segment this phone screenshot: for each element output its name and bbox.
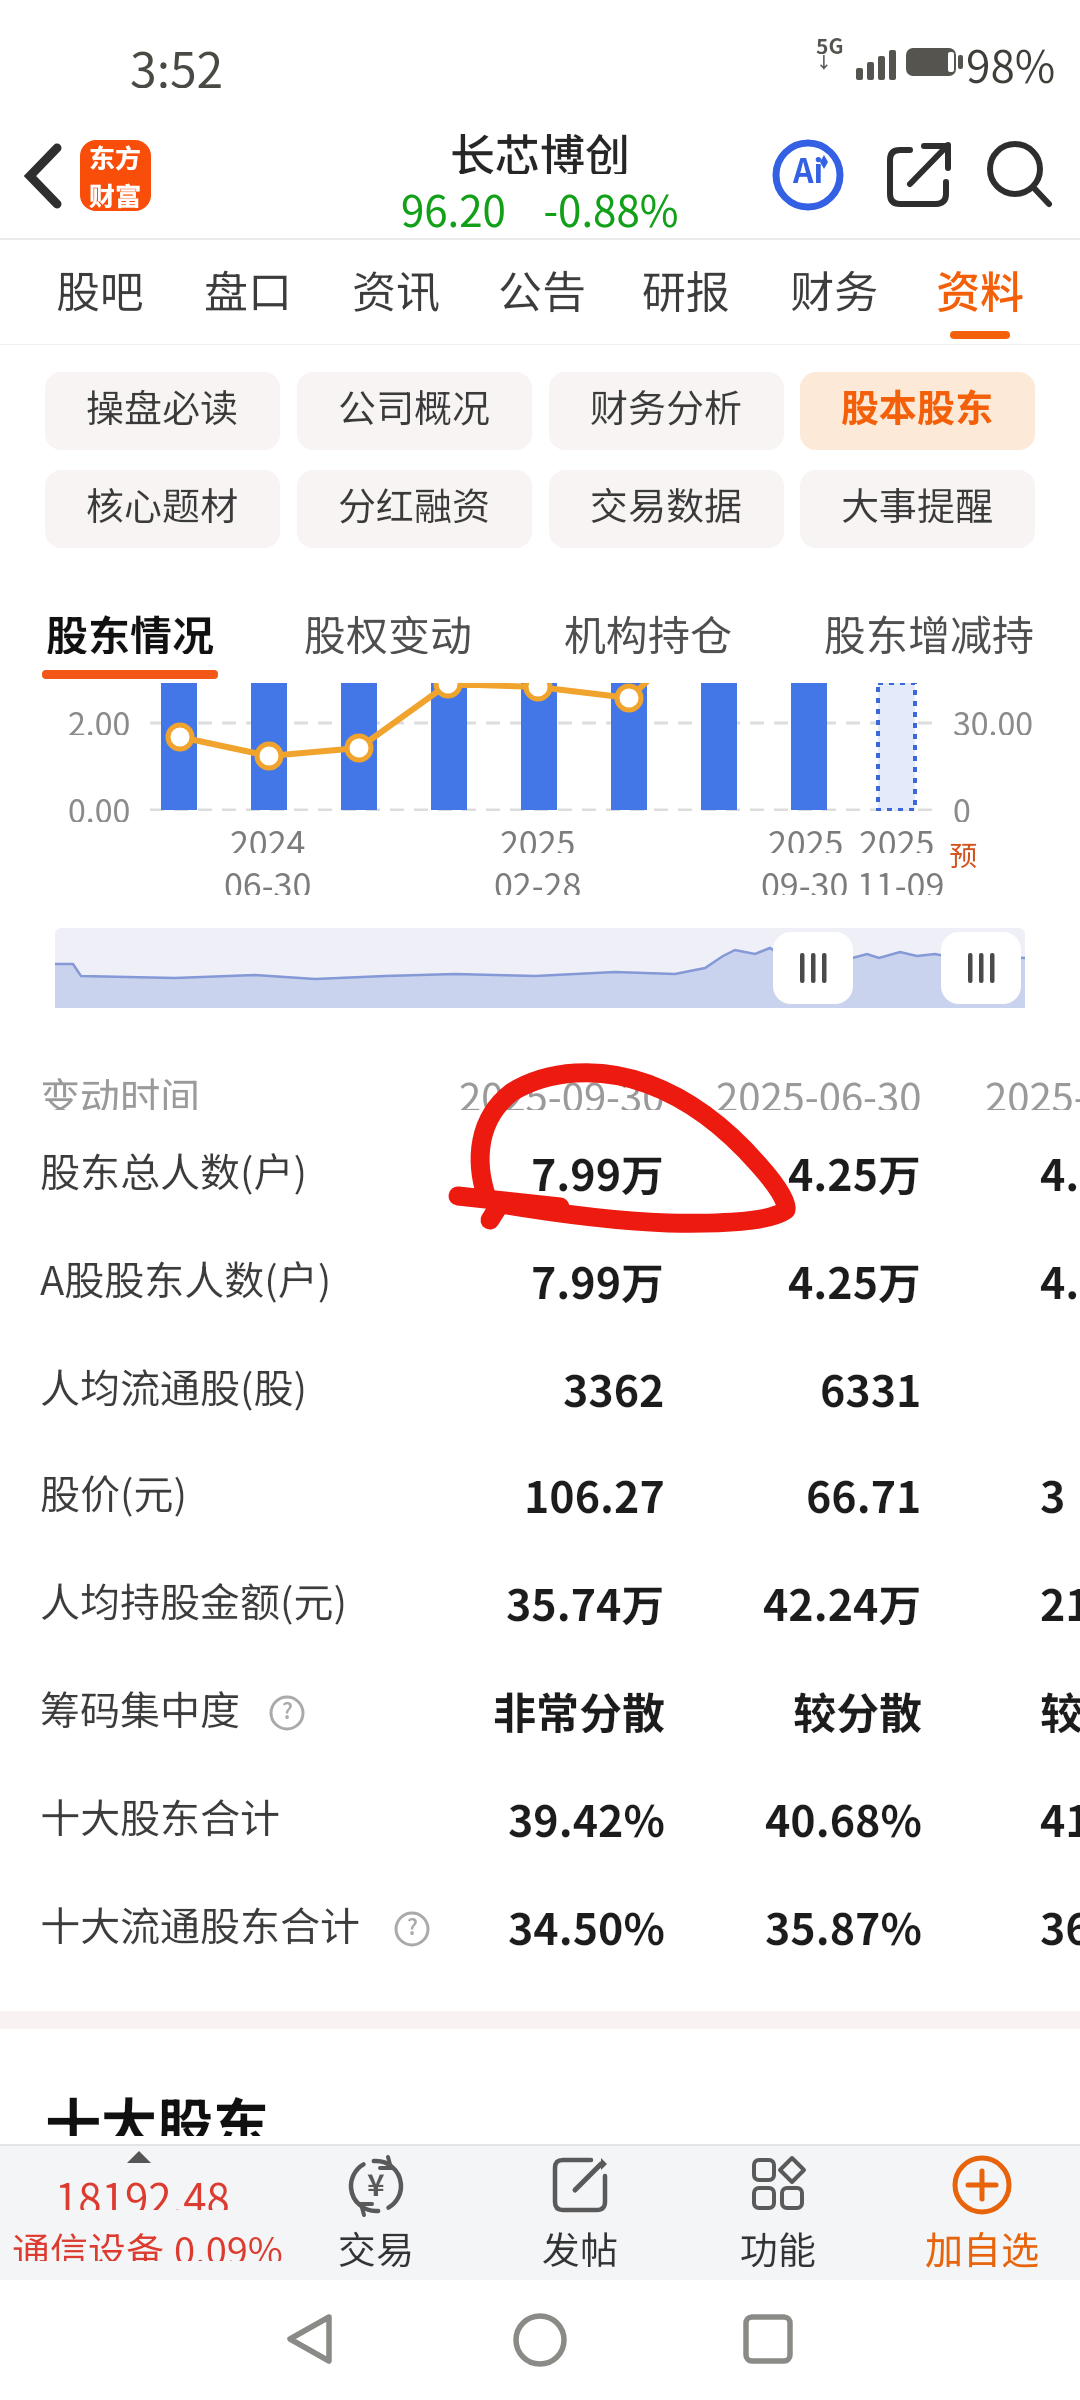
button[interactable]: 机构持仓 bbox=[560, 602, 736, 654]
staticText: 通信设备 bbox=[12, 2221, 165, 2261]
button[interactable] bbox=[470, 2290, 610, 2390]
button[interactable]: 分红融资 bbox=[297, 470, 532, 548]
staticText: 2025-1 bbox=[985, 1066, 1080, 1110]
button[interactable]: 股东情况 bbox=[42, 602, 218, 654]
staticText: 3:52 bbox=[130, 32, 224, 88]
staticText: 2025 bbox=[500, 817, 576, 853]
staticText: 分红融资 bbox=[338, 476, 491, 531]
staticText: 加自选 bbox=[925, 2220, 1040, 2270]
button[interactable]: 资料 bbox=[910, 256, 1050, 322]
staticText: 盘口 bbox=[204, 257, 292, 321]
button[interactable]: 资讯 bbox=[326, 256, 466, 322]
staticText: 2025-09-30 bbox=[459, 1066, 665, 1110]
staticText: 发帖 bbox=[542, 2220, 619, 2270]
button[interactable]: 股吧 bbox=[30, 256, 170, 322]
button[interactable]: ? bbox=[269, 1695, 305, 1731]
staticText: 股吧 bbox=[56, 257, 144, 321]
button[interactable]: 操盘必读 bbox=[45, 372, 280, 450]
staticText: 11-09 bbox=[857, 859, 945, 895]
staticText: Ai bbox=[793, 146, 824, 192]
staticText: 30.00 bbox=[953, 699, 1033, 735]
button[interactable]: 大事提醒 bbox=[800, 470, 1035, 548]
staticText: 长芯博创 bbox=[450, 120, 631, 174]
staticText: 39.42% bbox=[508, 1787, 665, 1841]
staticText: 大事提醒 bbox=[841, 476, 994, 531]
staticText: 02-28 bbox=[494, 859, 582, 895]
button[interactable] bbox=[773, 932, 853, 1004]
staticText: 98% bbox=[966, 32, 1056, 88]
staticText: 2025-06-30 bbox=[716, 1066, 922, 1110]
button[interactable]: 股东增减持 bbox=[822, 602, 1036, 654]
staticText: 筹码集中度 bbox=[40, 1679, 240, 1733]
staticText: ? bbox=[407, 1909, 418, 1941]
staticText: 非常分散 bbox=[493, 1679, 665, 1733]
button[interactable] bbox=[884, 142, 954, 212]
staticText: ¥ bbox=[367, 2161, 385, 2204]
button[interactable]: 东方 bbox=[80, 140, 151, 211]
button[interactable]: 财务 bbox=[764, 256, 904, 322]
staticText: 4.6 bbox=[1040, 1249, 1080, 1303]
staticText: 0.09% bbox=[174, 2221, 283, 2261]
button[interactable]: 股本股东 bbox=[800, 372, 1035, 450]
button[interactable]: 功能 bbox=[712, 2146, 844, 2280]
staticText: 股权变动 bbox=[304, 602, 473, 654]
staticText: 资料 bbox=[936, 257, 1024, 321]
button[interactable] bbox=[941, 932, 1021, 1004]
staticText: 人均流通股(股) bbox=[40, 1357, 308, 1411]
staticText: 4.25万 bbox=[788, 1249, 922, 1303]
staticText: 股东增减持 bbox=[824, 602, 1035, 654]
button[interactable]: ¥ bbox=[310, 2146, 442, 2280]
staticText: 东方 bbox=[89, 140, 142, 176]
staticText: 2.00 bbox=[68, 699, 131, 735]
staticText: 0 bbox=[953, 786, 971, 822]
button[interactable]: 核心题材 bbox=[45, 470, 280, 548]
button[interactable] bbox=[700, 2290, 840, 2390]
staticText: 较 bbox=[1040, 1679, 1080, 1733]
button[interactable]: 公告 bbox=[472, 256, 612, 322]
button[interactable]: 财务分析 bbox=[549, 372, 784, 450]
staticText: 交易 bbox=[338, 2220, 415, 2270]
staticText: 交易数据 bbox=[590, 476, 743, 531]
staticText: 2025 bbox=[859, 817, 935, 853]
staticText: 十大股东 bbox=[45, 2080, 269, 2136]
button[interactable] bbox=[10, 130, 80, 220]
staticText: 资讯 bbox=[352, 257, 440, 321]
staticText: 40.68% bbox=[765, 1787, 922, 1841]
staticText: 较分散 bbox=[793, 1679, 922, 1733]
button[interactable]: ? bbox=[394, 1911, 430, 1947]
button[interactable]: 公司概况 bbox=[297, 372, 532, 450]
staticText: 核心题材 bbox=[86, 476, 239, 531]
staticText: 财富 bbox=[89, 176, 142, 209]
staticText: 106.27 bbox=[524, 1463, 665, 1517]
staticText: 股本股东 bbox=[841, 378, 994, 433]
button[interactable]: 交易数据 bbox=[549, 470, 784, 548]
button[interactable]: 发帖 bbox=[514, 2146, 646, 2280]
staticText: 机构持仓 bbox=[564, 602, 733, 654]
staticText: 股价(元) bbox=[40, 1463, 188, 1517]
staticText: 09-30 bbox=[761, 859, 849, 895]
staticText: 96.20 -0.88% bbox=[401, 178, 679, 230]
staticText: 研报 bbox=[642, 257, 730, 321]
staticText: 06-30 bbox=[224, 859, 312, 895]
staticText: 人均持股金额(元) bbox=[40, 1571, 348, 1625]
staticText: 3362 bbox=[563, 1357, 665, 1411]
button[interactable] bbox=[986, 140, 1056, 210]
button[interactable]: 股权变动 bbox=[300, 602, 476, 654]
staticText: 35.74万 bbox=[506, 1571, 665, 1625]
staticText: 股东情况 bbox=[46, 602, 215, 654]
staticText: 公告 bbox=[498, 257, 586, 321]
staticText: 十大流通股东合计 bbox=[40, 1895, 360, 1949]
staticText: 操盘必读 bbox=[86, 378, 239, 433]
button[interactable]: 加自选 bbox=[902, 2146, 1062, 2280]
staticText: 21. bbox=[1040, 1571, 1080, 1625]
staticText: 2024 bbox=[230, 817, 306, 853]
button[interactable]: 研报 bbox=[616, 256, 756, 322]
staticText: 股东总人数(户) bbox=[40, 1141, 308, 1195]
button[interactable] bbox=[0, 2146, 290, 2280]
staticText: A股股东人数(户) bbox=[40, 1249, 332, 1303]
button[interactable]: Ai bbox=[772, 139, 844, 211]
staticText: 0.00 bbox=[68, 786, 131, 822]
button[interactable] bbox=[240, 2290, 380, 2390]
button[interactable]: 盘口 bbox=[178, 256, 318, 322]
staticText: ? bbox=[282, 1693, 293, 1725]
